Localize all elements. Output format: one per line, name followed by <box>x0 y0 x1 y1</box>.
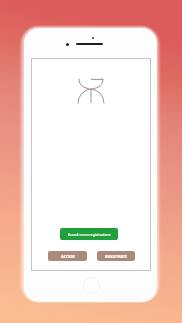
staticText: Accedi senza registrazione <box>68 232 111 237</box>
button[interactable]: Accedi senza registrazione <box>60 228 118 240</box>
staticText: REGISTRATI <box>105 254 127 259</box>
button[interactable]: ACCEDI <box>48 251 87 261</box>
staticText: ACCEDI <box>61 254 75 259</box>
button[interactable]: REGISTRATI <box>97 251 135 261</box>
